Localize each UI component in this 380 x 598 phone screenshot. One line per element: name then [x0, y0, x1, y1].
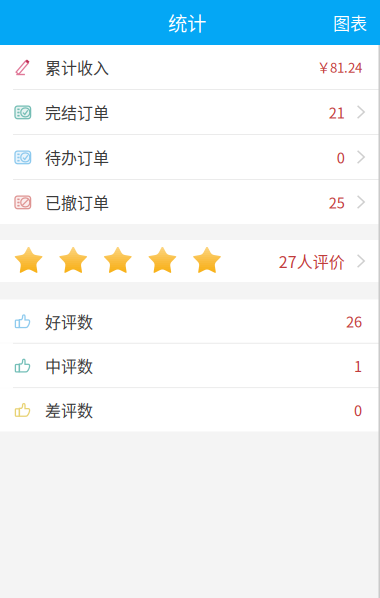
staticText: 好评数: [45, 310, 93, 333]
staticText: 已撤订单: [45, 190, 109, 214]
staticText: 统计: [168, 8, 206, 36]
staticText: 0: [337, 146, 345, 168]
button[interactable]: 中评数: [0, 344, 380, 387]
button[interactable]: 待办订单: [0, 135, 380, 179]
staticText: 0: [354, 399, 362, 420]
staticText: 25: [329, 191, 345, 213]
button[interactable]: 图表: [319, 0, 380, 45]
button[interactable]: 已撤订单: [0, 180, 380, 224]
staticText: 完结订单: [45, 100, 109, 124]
staticText: 差评数: [45, 398, 93, 421]
staticText: 图表: [333, 10, 367, 35]
button[interactable]: 27人评价: [0, 240, 380, 282]
staticText: 21: [329, 101, 345, 123]
staticText: 中评数: [45, 354, 93, 377]
button[interactable]: 好评数: [0, 299, 380, 343]
staticText: ￥81.24: [317, 57, 362, 77]
button[interactable]: 累计收入: [0, 45, 380, 89]
staticText: 1: [354, 355, 362, 376]
staticText: 27人评价: [279, 249, 345, 273]
button[interactable]: 差评数: [0, 388, 380, 431]
button[interactable]: 完结订单: [0, 90, 380, 134]
staticText: 26: [346, 310, 362, 332]
staticText: 待办订单: [45, 145, 109, 169]
staticText: 累计收入: [45, 55, 109, 79]
